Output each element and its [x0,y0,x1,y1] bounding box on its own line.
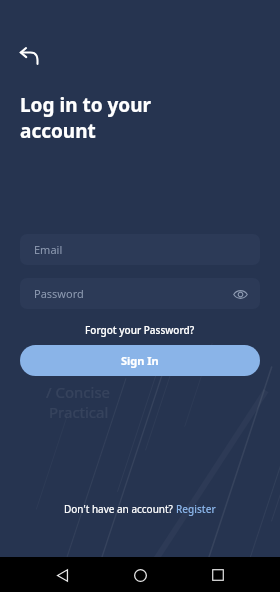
staticText: Sign In [121,353,159,368]
staticText: Don't have an account? [64,502,176,516]
button[interactable]: Sign In [20,345,260,376]
button[interactable]: Recent apps [202,559,234,591]
staticText: Practical [49,402,109,422]
staticText: Email [34,242,63,257]
staticText: Register [176,502,216,516]
button[interactable]: Forgot your Password? [77,321,203,339]
staticText: / Concise [46,382,111,402]
button[interactable]: Show password [228,282,252,306]
button[interactable]: Home [124,559,156,591]
button[interactable]: Email [20,234,260,265]
button[interactable]: Don't have an account? [56,499,224,519]
button[interactable]: Back [12,38,48,74]
button[interactable]: Back [46,559,78,591]
staticText: Log in to your account [20,92,152,144]
staticText: Password [34,286,84,301]
staticText: Forgot your Password? [85,323,195,337]
button[interactable]: Password [20,278,260,309]
